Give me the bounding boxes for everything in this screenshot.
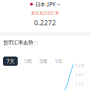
- staticText: 0.226: [75, 82, 84, 86]
- staticText: 7天: [6, 58, 14, 65]
- button[interactable]: 3周: [37, 57, 49, 66]
- staticText: 货币汇率走势: [3, 39, 33, 46]
- staticText: 日本 JPY: [35, 1, 55, 8]
- button[interactable]: 1周: [22, 57, 33, 66]
- staticText: 1年: [54, 58, 62, 65]
- staticText: 美元兑日元汇率: [31, 11, 59, 16]
- button[interactable]: 日本 JPY: [29, 1, 61, 8]
- staticText: 0.2272: [34, 18, 56, 27]
- staticText: 3周: [39, 58, 47, 65]
- staticText: 0.228: [75, 64, 84, 68]
- staticText: 1周: [24, 58, 32, 65]
- staticText: 0.227: [75, 73, 84, 77]
- button[interactable]: 1年: [53, 57, 64, 66]
- button[interactable]: 7天: [3, 57, 18, 66]
